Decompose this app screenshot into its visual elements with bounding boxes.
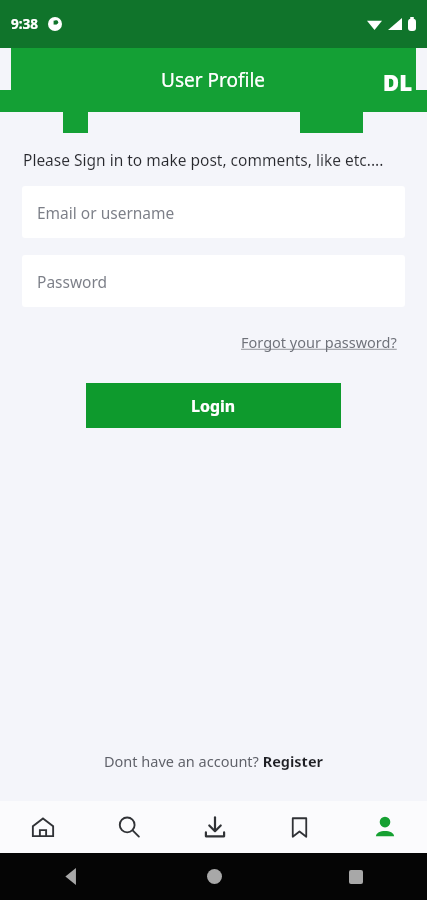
button[interactable]: Back — [0, 853, 143, 900]
button[interactable]: App logo DL — [383, 67, 412, 97]
staticText: Email or username — [37, 202, 175, 223]
button[interactable]: Home — [143, 853, 285, 900]
button[interactable]: Downloads — [172, 801, 257, 853]
staticText: DL — [383, 67, 412, 97]
staticText: User Profile — [161, 67, 266, 93]
staticText: Login — [191, 395, 236, 417]
button[interactable]: Email or username — [22, 186, 405, 238]
button[interactable]: Recents — [285, 853, 427, 900]
staticText: Forgot your password? — [241, 332, 397, 352]
staticText: Dont have an account? Register — [104, 751, 324, 771]
staticText: 9:38 — [11, 15, 38, 33]
button[interactable]: Dont have an account? Register — [100, 747, 328, 775]
button[interactable]: Search — [86, 801, 172, 853]
button[interactable]: Login — [86, 383, 341, 428]
button[interactable]: Password — [22, 255, 405, 307]
button[interactable]: Home — [0, 801, 86, 853]
staticText: Password — [37, 271, 108, 292]
button[interactable]: Profile — [342, 801, 427, 853]
button[interactable]: Forgot your password? — [239, 329, 399, 355]
staticText: Please Sign in to make post, comments, l… — [23, 149, 401, 170]
button[interactable]: Bookmarks — [257, 801, 342, 853]
